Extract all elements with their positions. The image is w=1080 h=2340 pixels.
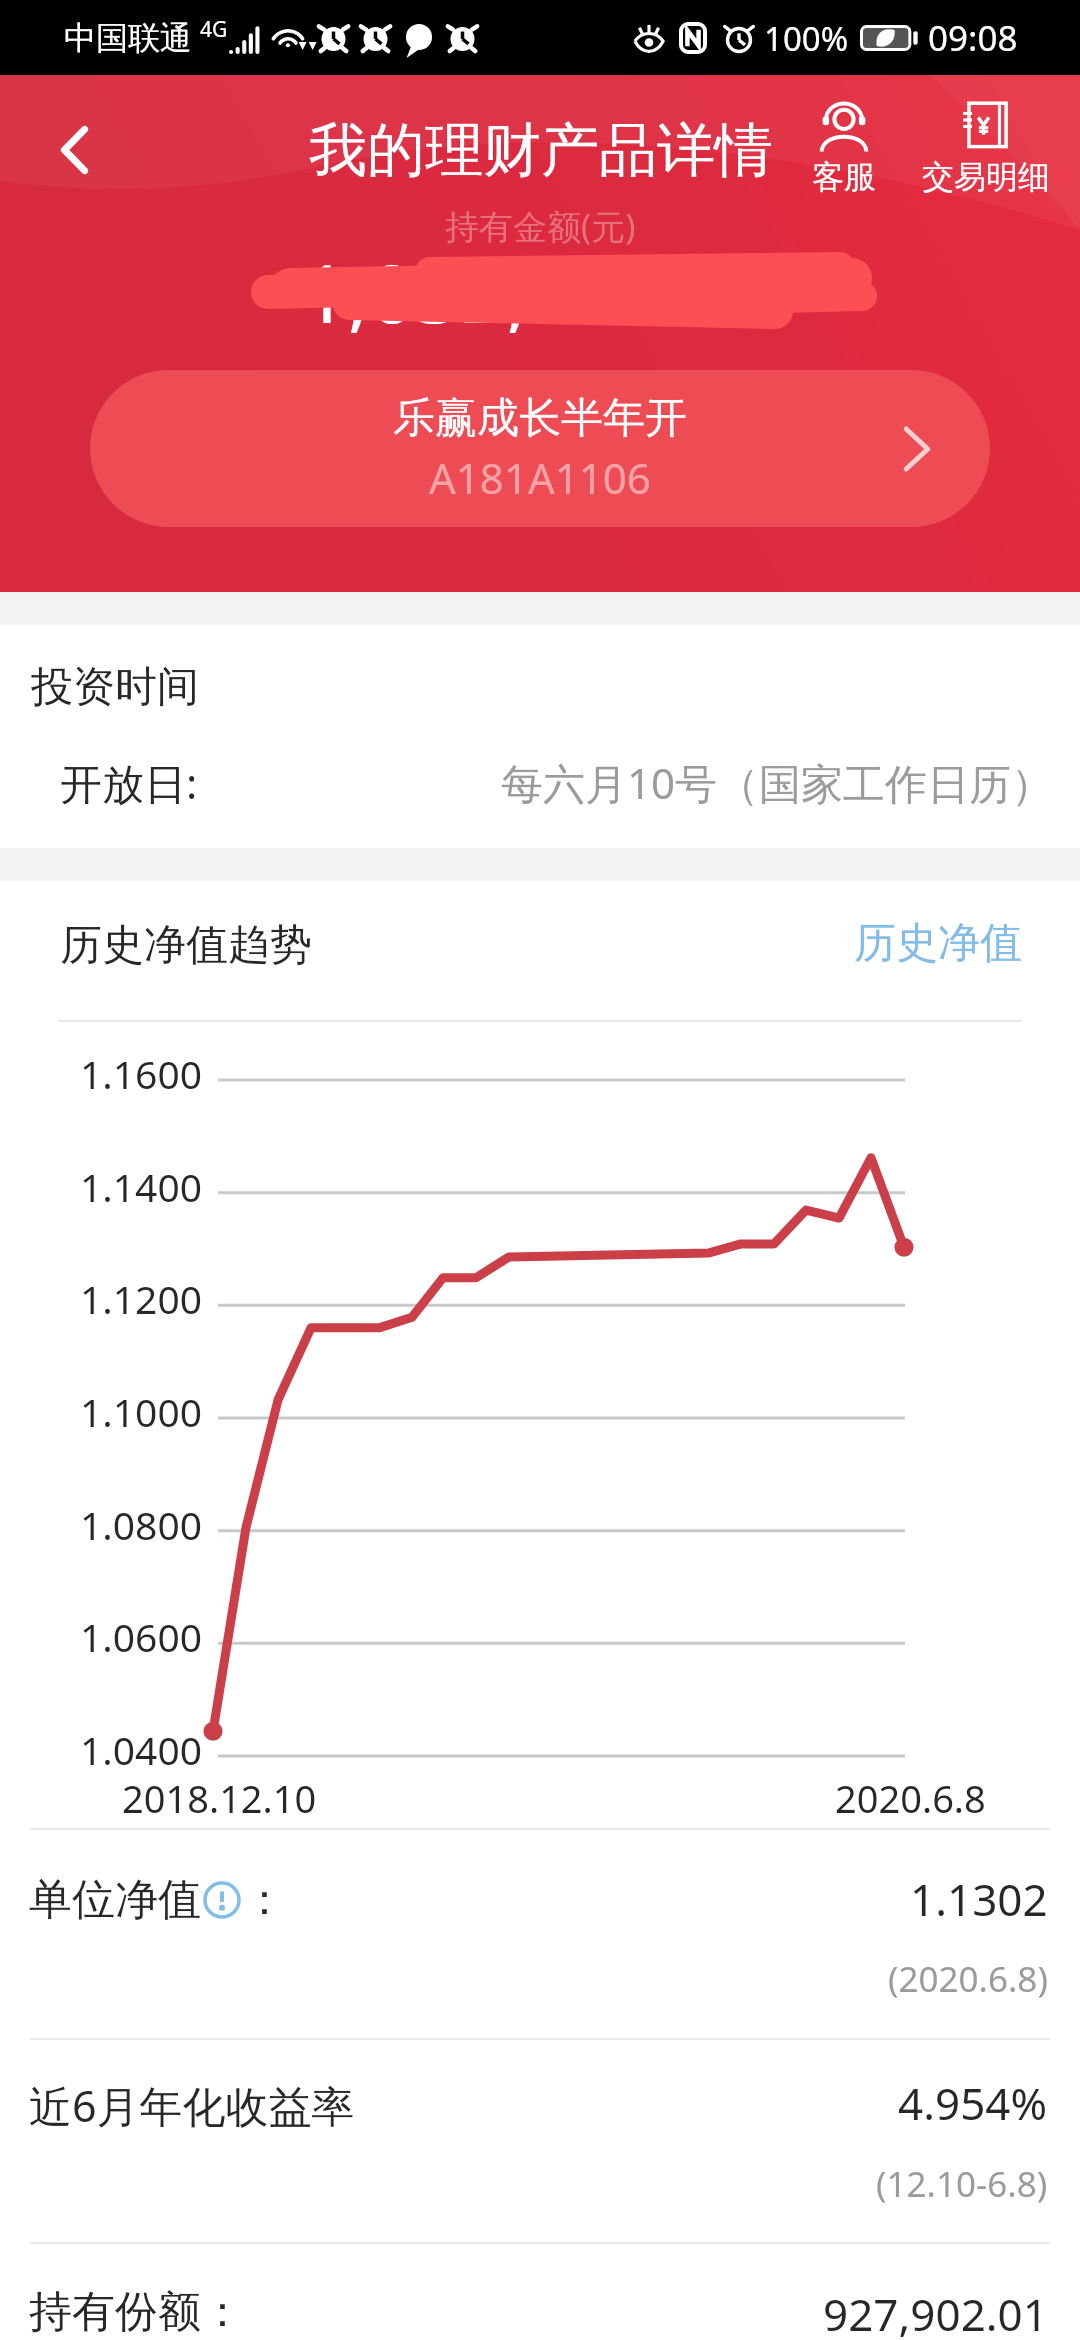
staticText: 927,902.01: [823, 2284, 1048, 2340]
staticText: 单位净值: [29, 1873, 201, 1927]
staticText: 1.1400: [80, 1160, 202, 1213]
staticText: 客服: [812, 157, 876, 197]
staticText: 1.1200: [80, 1272, 202, 1325]
staticText: 100%: [764, 16, 849, 61]
staticText: 1,032,417.41: [302, 237, 779, 346]
staticText: 1.0400: [80, 1723, 202, 1776]
staticText: 4G: [200, 15, 228, 44]
staticText: 4.954%: [898, 2073, 1048, 2133]
staticText: (2020.6.8): [888, 1955, 1048, 2003]
button[interactable]: 乐赢成长半年开: [90, 370, 990, 527]
staticText: 我的理财产品详情: [309, 114, 773, 187]
staticText: 开放日:: [60, 754, 198, 811]
staticText: ：: [243, 1873, 286, 1927]
staticText: 1.1302: [910, 1869, 1048, 1929]
staticText: 交易明细: [922, 157, 1050, 197]
button[interactable]: 客服 Customer service: [788, 97, 900, 197]
staticText: 1.1600: [80, 1047, 202, 1100]
staticText: 2018.12.10: [122, 1772, 317, 1824]
staticText: 近6月年化收益率: [29, 2076, 355, 2135]
staticText: 历史净值趋势: [60, 919, 312, 972]
staticText: 每六月10号（国家工作日历）: [501, 754, 1054, 811]
staticText: 投资时间: [31, 661, 199, 714]
staticText: 持有份额：: [29, 2285, 244, 2339]
staticText: A181A1106: [429, 449, 651, 506]
staticText: 2020.6.8: [835, 1772, 986, 1824]
staticText: 持有金额(元): [445, 203, 636, 249]
staticText: 乐赢成长半年开: [393, 392, 687, 445]
staticText: (12.10-6.8): [876, 2160, 1048, 2208]
staticText: 1.0800: [80, 1498, 202, 1551]
staticText: 1.1000: [80, 1385, 202, 1438]
staticText: 1.0600: [80, 1610, 202, 1663]
button[interactable]: 交易明细 Transactions: [900, 97, 1072, 197]
button[interactable]: Back: [32, 110, 118, 190]
staticText: 中国联通: [64, 18, 192, 58]
staticText: 09:08: [928, 14, 1018, 62]
button[interactable]: 历史净值: [854, 917, 1022, 970]
staticText: 历史净值: [854, 917, 1022, 970]
